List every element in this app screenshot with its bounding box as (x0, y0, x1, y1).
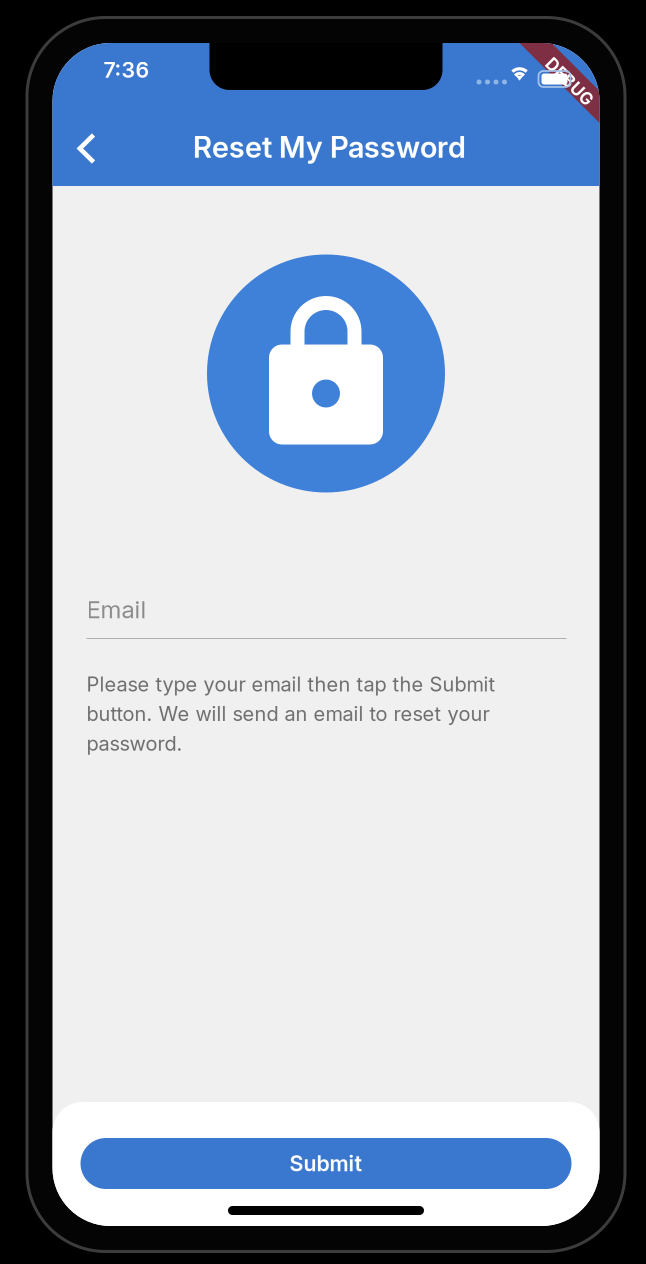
staticText: Please type your email then tap the Subm… (86, 672, 495, 756)
staticText: Submit (289, 1151, 362, 1176)
staticText: 7:36 (103, 57, 149, 83)
staticText: Email (86, 595, 146, 624)
staticText: DEBUG (539, 72, 599, 92)
button[interactable]: Back (58, 120, 114, 176)
staticText: Reset My Password (193, 129, 466, 165)
button[interactable]: Submit (80, 1138, 571, 1189)
